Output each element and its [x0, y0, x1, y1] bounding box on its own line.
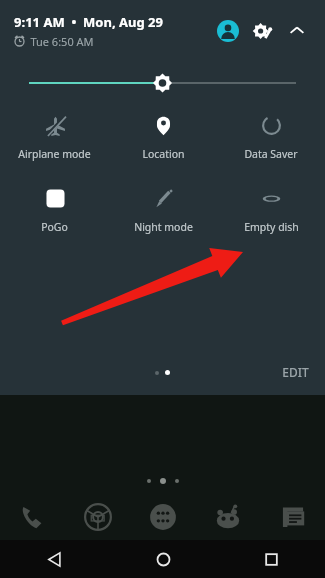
button[interactable]: Empty dish	[217, 183, 325, 236]
button[interactable]: Collapse	[281, 15, 313, 47]
staticText: Airplane mode	[18, 147, 91, 161]
button[interactable]: Data Saver	[217, 110, 325, 163]
button[interactable]: Brightness	[0, 62, 325, 104]
button[interactable]: Settings	[245, 13, 281, 49]
staticText: 9:11 AM • Mon, Aug 29	[14, 13, 163, 31]
staticText: Data Saver	[244, 147, 298, 161]
button[interactable]: Recents	[217, 540, 325, 578]
staticText: Empty dish	[244, 220, 299, 234]
button[interactable]: Airplane mode	[0, 110, 109, 163]
staticText: Tue 6:50 AM	[30, 34, 94, 49]
button[interactable]: Phone	[0, 494, 65, 540]
button[interactable]: PoGo	[0, 183, 109, 236]
button[interactable]: Location	[109, 110, 217, 163]
button[interactable]: Chrome Beta	[65, 494, 130, 540]
button[interactable]: User account	[211, 14, 245, 48]
button[interactable]: EDIT	[282, 364, 309, 380]
button[interactable]: Back	[0, 540, 109, 578]
button[interactable]: Reddit	[195, 494, 260, 540]
button[interactable]: Home	[109, 540, 217, 578]
staticText: Night mode	[134, 220, 193, 234]
staticText: EDIT	[282, 364, 309, 380]
button[interactable]: Messages	[260, 494, 325, 540]
staticText: Location	[142, 147, 185, 161]
button[interactable]: Apps	[130, 494, 195, 540]
staticText: PoGo	[41, 220, 68, 234]
button[interactable]: Night mode	[109, 183, 217, 236]
